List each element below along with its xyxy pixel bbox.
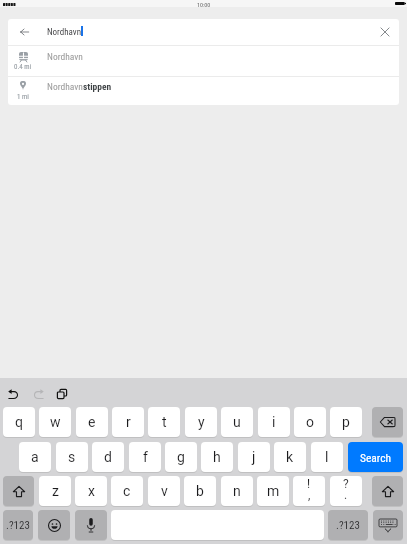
- button[interactable]: t: [148, 407, 180, 437]
- staticText: y: [198, 414, 205, 430]
- staticText: .: [344, 488, 348, 502]
- button[interactable]: f: [129, 442, 161, 472]
- staticText: ,: [308, 488, 311, 502]
- staticText: Search: [360, 451, 392, 464]
- button[interactable]: z: [39, 476, 71, 506]
- button[interactable]: Shift: [3, 476, 34, 506]
- button[interactable]: Shift: [372, 476, 403, 506]
- button[interactable]: u: [221, 407, 253, 437]
- button[interactable]: Copy: [51, 383, 73, 405]
- button[interactable]: k: [274, 442, 306, 472]
- button[interactable]: v: [148, 476, 180, 506]
- button[interactable]: Hide keyboard: [373, 510, 403, 540]
- staticText: n: [233, 483, 241, 499]
- button[interactable]: r: [112, 407, 144, 437]
- button[interactable]: Search: [348, 442, 403, 472]
- staticText: .?123: [6, 519, 30, 532]
- staticText: k: [286, 449, 294, 465]
- staticText: v: [161, 483, 168, 499]
- staticText: x: [88, 483, 95, 499]
- staticText: 1 mi: [17, 93, 29, 101]
- staticText: s: [68, 449, 76, 465]
- button[interactable]: 0.4 mi: [8, 46, 399, 76]
- button[interactable]: Emoji: [38, 510, 70, 540]
- button[interactable]: o: [294, 407, 326, 437]
- staticText: q: [15, 414, 23, 430]
- button[interactable]: Backspace: [372, 407, 403, 437]
- staticText: w: [50, 414, 61, 430]
- button[interactable]: q: [3, 407, 35, 437]
- button[interactable]: .?123: [3, 510, 33, 540]
- button[interactable]: i: [258, 407, 290, 437]
- button[interactable]: d: [92, 442, 124, 472]
- staticText: o: [306, 414, 314, 430]
- button[interactable]: m: [257, 476, 289, 506]
- staticText: e: [88, 414, 96, 430]
- button[interactable]: Back: [8, 19, 399, 45]
- staticText: Nordhavn: [47, 51, 83, 62]
- button[interactable]: w: [39, 407, 71, 437]
- button[interactable]: c: [111, 476, 143, 506]
- staticText: 0.4 mi: [14, 63, 32, 71]
- button[interactable]: 1 mi: [8, 76, 399, 105]
- button[interactable]: s: [56, 442, 88, 472]
- button[interactable]: n: [221, 476, 253, 506]
- button[interactable]: Voice input: [75, 510, 107, 540]
- staticText: h: [213, 449, 221, 465]
- staticText: 10:00: [197, 1, 211, 8]
- button[interactable]: e: [76, 407, 108, 437]
- button[interactable]: x: [75, 476, 107, 506]
- staticText: d: [104, 449, 112, 465]
- button[interactable]: Back: [13, 21, 35, 43]
- staticText: !: [307, 477, 311, 491]
- staticText: Nordhavn: [47, 27, 82, 38]
- staticText: g: [177, 449, 185, 465]
- button[interactable]: g: [165, 442, 197, 472]
- staticText: z: [52, 483, 59, 499]
- button[interactable]: j: [238, 442, 270, 472]
- staticText: l: [325, 449, 329, 465]
- staticText: Nordhavnstippen: [47, 81, 112, 92]
- button[interactable]: ?: [330, 476, 362, 506]
- button[interactable]: !: [293, 476, 325, 506]
- staticText: i: [272, 414, 276, 430]
- staticText: j: [252, 449, 256, 465]
- staticText: ?: [343, 477, 349, 491]
- button[interactable]: Undo: [2, 383, 24, 405]
- button[interactable]: y: [185, 407, 217, 437]
- button[interactable]: p: [330, 407, 362, 437]
- button[interactable]: h: [201, 442, 233, 472]
- button[interactable]: a: [19, 442, 51, 472]
- button[interactable]: Clear search: [375, 22, 395, 42]
- button[interactable]: Redo: [27, 383, 49, 405]
- staticText: m: [267, 483, 280, 499]
- button[interactable]: l: [311, 442, 343, 472]
- staticText: b: [196, 483, 204, 499]
- staticText: r: [126, 414, 131, 430]
- staticText: .?123: [336, 519, 360, 532]
- button[interactable]: .?123: [328, 510, 368, 540]
- staticText: t: [162, 414, 167, 430]
- staticText: a: [31, 449, 39, 465]
- staticText: u: [233, 414, 241, 430]
- staticText: f: [143, 449, 148, 465]
- button[interactable]: b: [184, 476, 216, 506]
- staticText: c: [123, 483, 131, 499]
- staticText: p: [342, 414, 350, 430]
